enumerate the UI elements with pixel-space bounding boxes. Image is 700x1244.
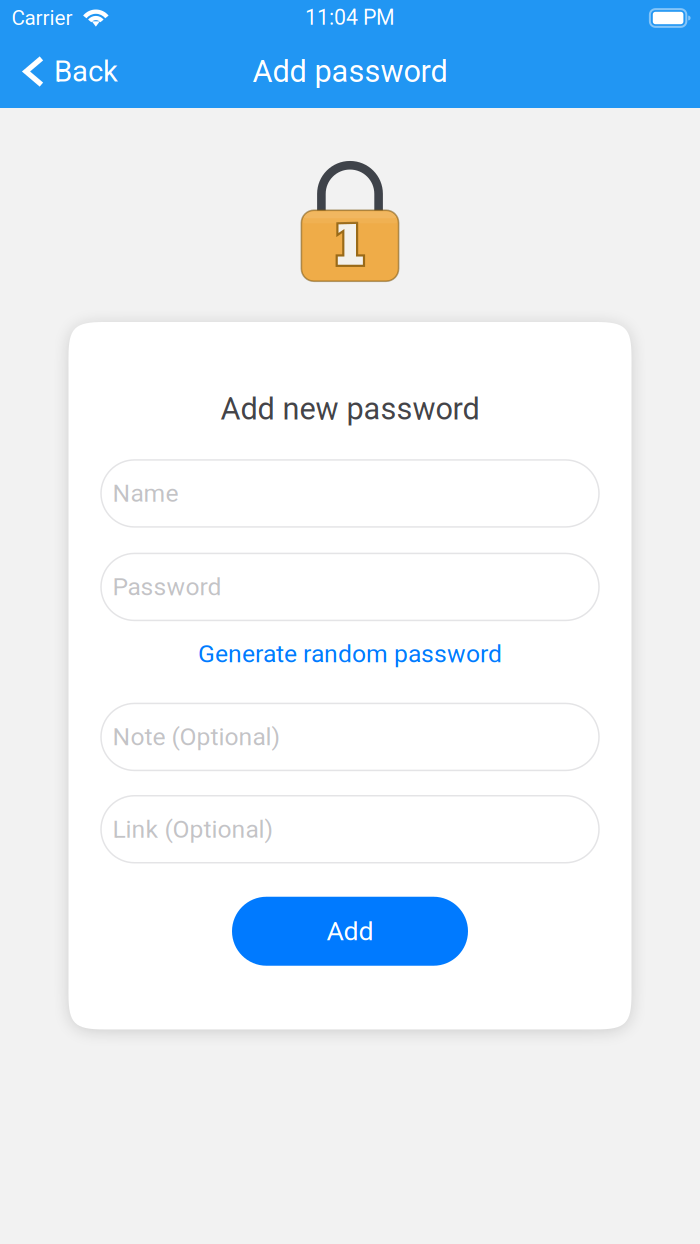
button[interactable]: Note (Optional) <box>101 703 599 770</box>
staticText: Link (Optional) <box>113 815 274 844</box>
staticText: Add <box>326 916 373 947</box>
button[interactable]: Add <box>232 897 468 966</box>
button[interactable]: Name <box>101 460 599 527</box>
staticText: Back <box>54 54 118 89</box>
staticText: Note (Optional) <box>113 722 281 751</box>
staticText: Name <box>113 479 179 508</box>
staticText: Generate random password <box>198 639 502 668</box>
staticText: 11:04 PM <box>305 5 395 30</box>
button[interactable]: Back <box>0 35 134 107</box>
staticText: Password <box>113 572 222 601</box>
button[interactable]: Generate random password <box>101 628 599 679</box>
staticText: Add password <box>252 53 447 89</box>
button[interactable]: Password <box>101 553 599 620</box>
staticText: Carrier <box>11 6 72 30</box>
staticText: Add new password <box>220 391 479 427</box>
button[interactable]: Link (Optional) <box>101 796 599 863</box>
